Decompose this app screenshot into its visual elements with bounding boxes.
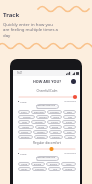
staticText: Tender (21, 168, 28, 171)
button[interactable]: Playful (62, 120, 76, 124)
button[interactable]: Aching (18, 162, 30, 166)
staticText: Bloated (50, 163, 57, 166)
button[interactable]: Inspired (33, 130, 48, 134)
staticText: Cheerful (52, 136, 60, 139)
staticText: Unbearable (64, 152, 76, 155)
button[interactable]: Proud (18, 110, 30, 114)
button[interactable]: Free (63, 115, 76, 119)
staticText: Peaceful (23, 116, 31, 119)
staticText: Unbearable (64, 100, 76, 103)
staticText: HOW ARE YOU? (23, 79, 71, 84)
button[interactable]: Eager (63, 110, 76, 114)
staticText: Heavy (66, 163, 72, 166)
button[interactable]: Confident (47, 110, 62, 114)
staticText: Energetic (21, 136, 30, 139)
button[interactable]: Joyful (49, 130, 62, 134)
staticText: Joyful (53, 131, 58, 134)
staticText: Aching (21, 163, 28, 166)
staticText: Confident (50, 111, 59, 114)
staticText: Kind (68, 136, 72, 139)
button[interactable]: Describe how you feel (36, 156, 59, 161)
button[interactable]: Kind (64, 135, 76, 139)
button[interactable]: Hopeful (18, 125, 34, 129)
staticText: Playful (66, 121, 72, 124)
staticText: Loving (53, 116, 59, 119)
staticText: Quickly enter in how you are feeling mul… (3, 21, 59, 39)
button[interactable]: Cramping (32, 167, 47, 171)
staticText: Satisfied (39, 116, 47, 119)
button[interactable]: Bloated (46, 162, 60, 166)
staticText: Hopeful (22, 126, 30, 129)
staticText: Content (21, 131, 29, 134)
staticText: Free (68, 116, 72, 119)
staticText: Burning (34, 163, 42, 166)
button[interactable]: Heavy (61, 162, 76, 166)
button[interactable]: Energetic (18, 135, 33, 139)
staticText: Regular discomfort (18, 141, 76, 145)
button[interactable]: Tender (18, 167, 31, 171)
staticText: Tingling (65, 168, 73, 171)
staticText: Track (3, 11, 20, 19)
button[interactable]: Profile (71, 79, 76, 84)
staticText: Sore (53, 168, 57, 171)
button[interactable]: Valued (35, 125, 48, 129)
button[interactable]: Thankful (31, 120, 46, 124)
staticText: Valued (38, 126, 45, 129)
button[interactable]: Tingling (62, 167, 76, 171)
staticText: Eager (67, 111, 73, 114)
button[interactable]: Content (18, 130, 32, 134)
button[interactable]: Rested (49, 125, 62, 129)
staticText: Thankful (35, 121, 43, 124)
staticText: Describe how you feel (36, 156, 59, 161)
button[interactable]: Describe how you feel (36, 104, 59, 109)
staticText: None (20, 152, 27, 155)
staticText: 9:41 (17, 71, 23, 75)
button[interactable]: Peaceful (18, 115, 35, 119)
button[interactable]: Safe (63, 125, 76, 129)
staticText: Inspired (37, 131, 45, 134)
staticText: Open (22, 121, 27, 124)
staticText: Safe (68, 126, 72, 129)
button[interactable]: Cheerful (49, 135, 63, 139)
button[interactable]: Open (18, 120, 30, 124)
staticText: Right away (34, 111, 44, 114)
button[interactable]: Sore (48, 167, 61, 171)
staticText: Calm (67, 131, 72, 134)
staticText: Relieved (37, 136, 45, 139)
staticText: Cramping (35, 168, 44, 171)
staticText: Describe how you feel (36, 104, 59, 109)
staticText: Proud (21, 111, 27, 114)
button[interactable]: Loving (50, 115, 62, 119)
staticText: Cheerful/Calm (18, 89, 76, 93)
button[interactable]: Curious (47, 120, 61, 124)
button[interactable]: Burning (31, 162, 45, 166)
button[interactable]: Relieved (34, 135, 48, 139)
staticText: Curious (51, 121, 58, 124)
button[interactable]: Right away (31, 110, 46, 114)
staticText: Rested (52, 126, 59, 129)
staticText: None (20, 100, 27, 103)
button[interactable]: Calm (63, 130, 76, 134)
button[interactable]: Satisfied (36, 115, 49, 119)
